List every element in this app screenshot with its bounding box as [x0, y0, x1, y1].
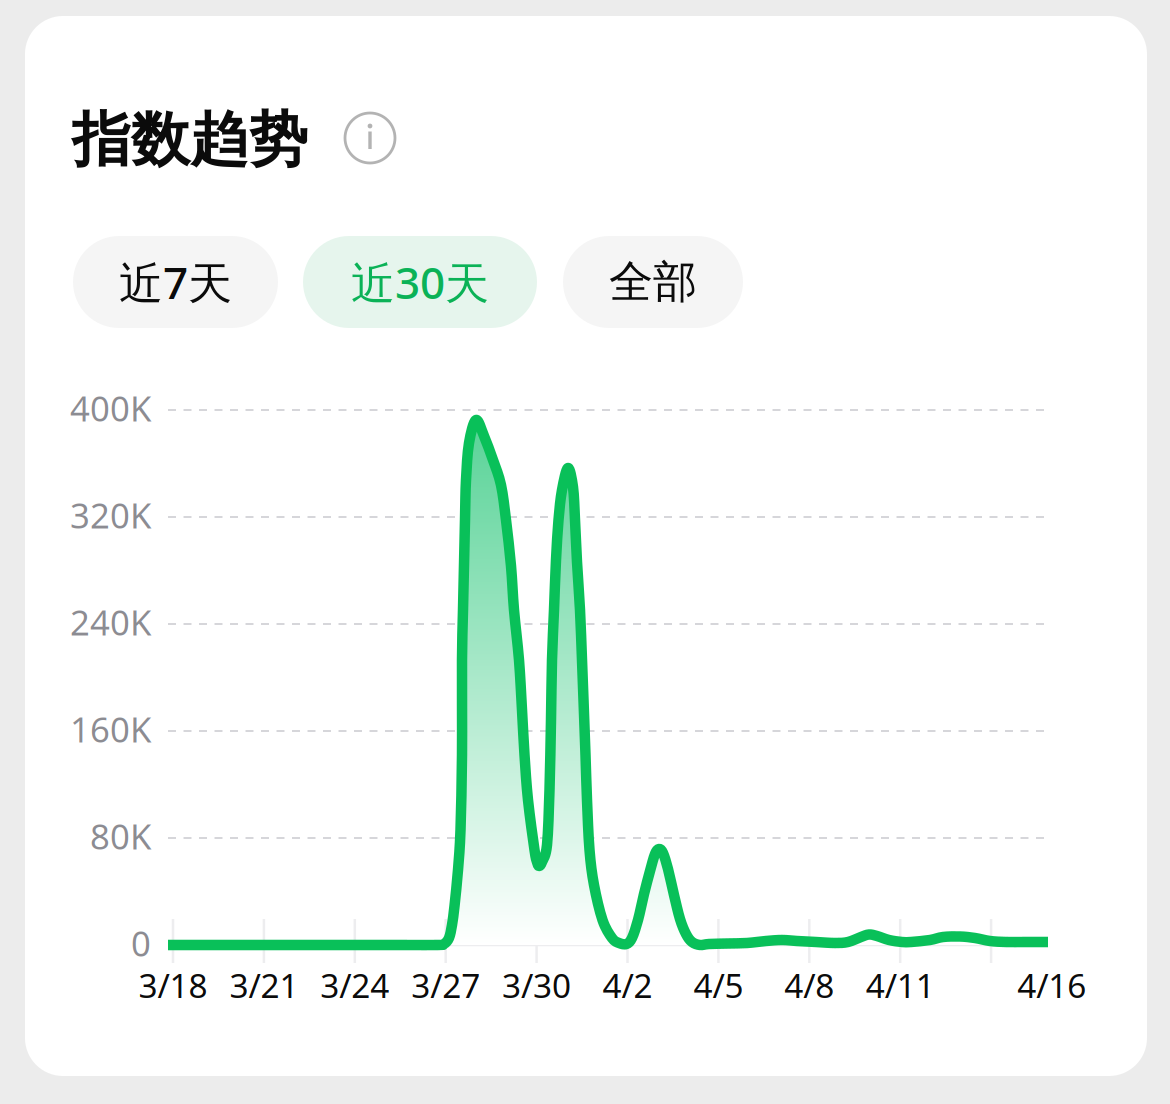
staticText: 3/30: [502, 963, 571, 1007]
staticText: 3/21: [229, 963, 298, 1007]
staticText: 指数趋势: [72, 104, 308, 176]
staticText: 160K: [70, 706, 151, 752]
staticText: 80K: [90, 813, 151, 859]
staticText: 4/11: [866, 963, 935, 1007]
staticText: 4/2: [602, 963, 652, 1007]
staticText: 近7天: [119, 253, 232, 311]
staticText: 3/24: [320, 963, 389, 1007]
button[interactable]: 全部: [563, 236, 743, 328]
staticText: 3/18: [138, 963, 207, 1007]
staticText: 4/5: [693, 963, 743, 1007]
staticText: 3/27: [411, 963, 480, 1007]
staticText: 320K: [70, 492, 151, 538]
staticText: 全部: [609, 255, 697, 309]
staticText: 4/8: [784, 963, 834, 1007]
staticText: 近30天: [351, 253, 489, 311]
button[interactable]: 近7天: [73, 236, 278, 328]
staticText: 4/16: [1017, 963, 1086, 1007]
staticText: 240K: [70, 599, 151, 645]
button[interactable]: About index trend: [344, 112, 396, 164]
button[interactable]: 近30天: [303, 236, 537, 328]
staticText: 400K: [70, 385, 151, 431]
staticText: 0: [131, 920, 151, 966]
